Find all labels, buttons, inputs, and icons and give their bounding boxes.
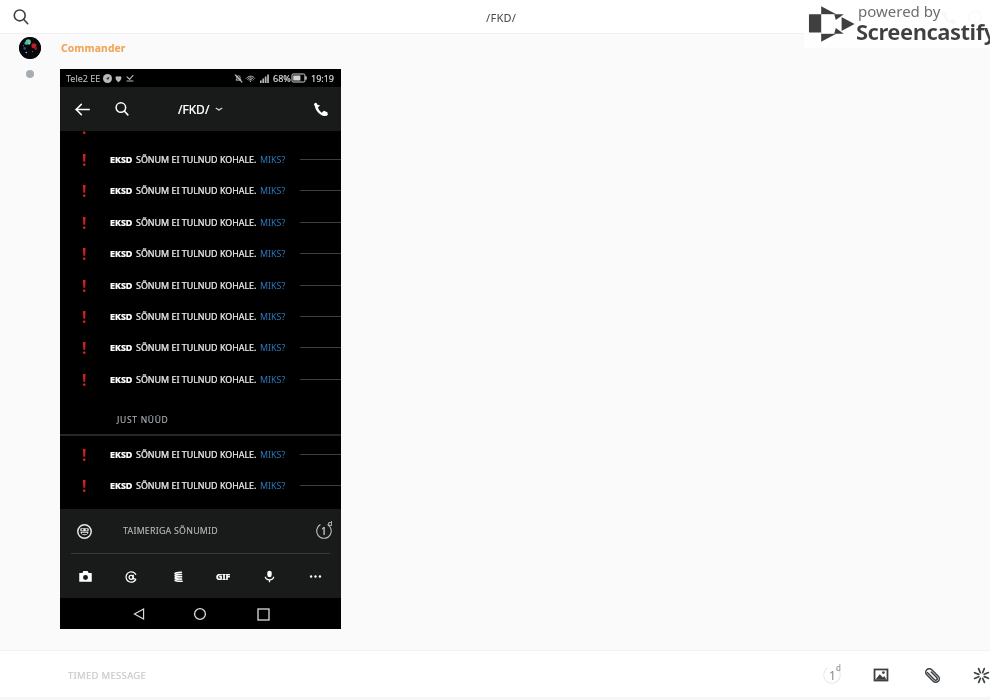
staticText: d: [836, 662, 841, 673]
staticText: !: [82, 337, 87, 355]
staticText: MIKS?: [260, 247, 286, 259]
button[interactable]: !: [60, 445, 341, 463]
button[interactable]: Image: [868, 662, 894, 688]
staticText: MIKS?: [260, 184, 286, 196]
staticText: 19:19: [311, 72, 335, 84]
staticText: !: [82, 243, 87, 261]
staticText: d: [328, 519, 333, 529]
staticText: SÕNUM EI TULNUD KOHALE.: [136, 341, 257, 353]
button[interactable]: !: [60, 370, 341, 388]
staticText: MIKS?: [260, 216, 286, 228]
button[interactable]: Call: [936, 4, 962, 30]
button[interactable]: Timed message: 1 day: [818, 661, 848, 689]
button[interactable]: /FKD/: [176, 95, 225, 123]
staticText: 1: [321, 524, 327, 538]
staticText: EKSD: [110, 479, 133, 491]
button[interactable]: Timer: 1 day: [311, 518, 339, 544]
staticText: Tele2 EE: [66, 72, 101, 84]
button[interactable]: Attach file: [919, 662, 945, 688]
button[interactable]: Call: [306, 94, 336, 124]
button[interactable]: !: [60, 150, 341, 168]
button[interactable]: More chats: [26, 70, 34, 78]
staticText: !: [82, 369, 87, 387]
staticText: Screencastify: [856, 16, 990, 46]
staticText: MIKS?: [260, 310, 286, 322]
button[interactable]: Commander avatar: [19, 37, 41, 59]
staticText: !: [82, 180, 87, 198]
staticText: !: [82, 212, 87, 230]
staticText: SÕNUM EI TULNUD KOHALE.: [136, 479, 257, 491]
staticText: !: [82, 444, 87, 462]
staticText: EKSD: [110, 153, 133, 165]
button[interactable]: !: [60, 307, 341, 325]
staticText: SÕNUM EI TULNUD KOHALE.: [136, 448, 257, 460]
button[interactable]: Camera: [72, 563, 98, 589]
button[interactable]: Voice: [256, 563, 282, 589]
staticText: EKSD: [110, 184, 133, 196]
staticText: SÕNUM EI TULNUD KOHALE.: [136, 247, 257, 259]
staticText: EKSD: [110, 216, 133, 228]
button[interactable]: !: [60, 181, 341, 199]
staticText: 1: [829, 667, 836, 683]
staticText: !: [82, 306, 87, 324]
staticText: EKSD: [110, 448, 133, 460]
button[interactable]: More: [302, 563, 328, 589]
staticText: SÕNUM EI TULNUD KOHALE.: [136, 279, 257, 291]
button[interactable]: !: [60, 244, 341, 262]
button[interactable]: Info: [962, 4, 988, 30]
button[interactable]: !: [60, 131, 341, 136]
button[interactable]: !: [60, 213, 341, 231]
staticText: MIKS?: [260, 479, 286, 491]
staticText: Commander: [61, 41, 126, 55]
button[interactable]: Back: [126, 601, 152, 627]
staticText: GIF: [216, 570, 231, 582]
button[interactable]: Search: [8, 4, 34, 30]
staticText: MIKS?: [260, 373, 286, 385]
staticText: MIKS?: [260, 153, 286, 165]
staticText: /FKD/: [486, 10, 517, 25]
staticText: !: [82, 475, 87, 493]
button[interactable]: Back: [68, 95, 96, 123]
staticText: EKSD: [110, 341, 133, 353]
staticText: SÕNUM EI TULNUD KOHALE.: [136, 373, 257, 385]
staticText: TAIMERIGA SÕNUMID: [123, 525, 218, 537]
button[interactable]: Recents: [250, 601, 276, 627]
button[interactable]: !: [60, 276, 341, 294]
staticText: EKSD: [110, 373, 133, 385]
button[interactable]: Stickers: [164, 563, 190, 589]
staticText: EKSD: [110, 279, 133, 291]
staticText: JUST NÜÜD: [117, 414, 169, 426]
staticText: !: [82, 131, 87, 135]
staticText: SÕNUM EI TULNUD KOHALE.: [136, 216, 257, 228]
button[interactable]: Mention: [118, 563, 144, 589]
staticText: MIKS?: [260, 279, 286, 291]
button[interactable]: !: [60, 338, 341, 356]
button[interactable]: Home: [187, 601, 213, 627]
button[interactable]: Emoji: [69, 516, 99, 546]
staticText: 68%: [273, 72, 291, 84]
staticText: powered by: [858, 1, 941, 21]
staticText: EKSD: [110, 310, 133, 322]
staticText: MIKS?: [260, 341, 286, 353]
staticText: SÕNUM EI TULNUD KOHALE.: [136, 184, 257, 196]
staticText: SÕNUM EI TULNUD KOHALE.: [136, 310, 257, 322]
button[interactable]: TIMED MESSAGE: [68, 669, 147, 682]
button[interactable]: Search: [108, 95, 136, 123]
staticText: !: [82, 149, 87, 167]
staticText: MIKS?: [260, 448, 286, 460]
staticText: !: [82, 275, 87, 293]
button[interactable]: GIF: [210, 563, 236, 589]
staticText: /FKD/: [178, 101, 210, 117]
staticText: SÕNUM EI TULNUD KOHALE.: [136, 153, 257, 165]
staticText: EKSD: [110, 247, 133, 259]
button[interactable]: !: [60, 476, 341, 494]
button[interactable]: Effects: [968, 662, 990, 688]
